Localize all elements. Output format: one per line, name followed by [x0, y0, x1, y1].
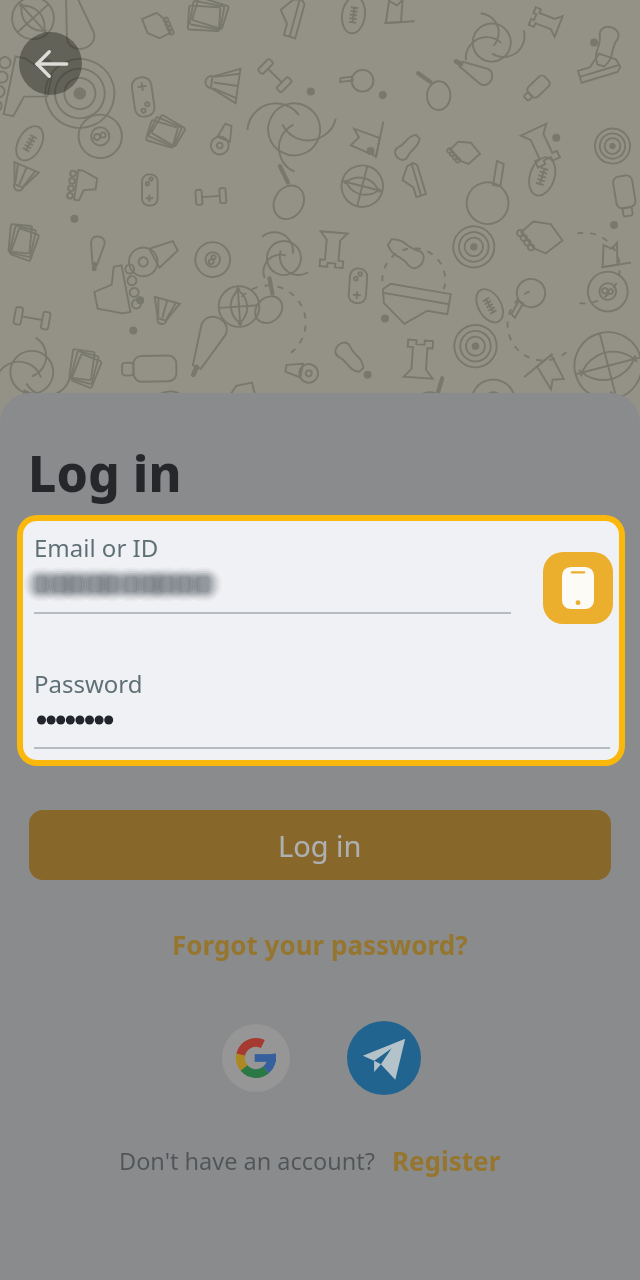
staticText: Log in	[28, 439, 182, 507]
staticText: Don't have an account?	[119, 1145, 376, 1177]
button[interactable]: Register	[376, 1139, 507, 1182]
button[interactable]: Login with phone number	[543, 552, 613, 624]
staticText: Email or ID	[34, 531, 159, 564]
button[interactable]: Log in	[29, 810, 611, 880]
button[interactable]: Sign in with Telegram	[347, 1021, 421, 1095]
staticText: Register	[392, 1143, 501, 1178]
staticText: Log in	[278, 826, 362, 865]
button[interactable]: Forgot your password?	[162, 921, 478, 968]
button[interactable]: Sign in with Google	[222, 1024, 290, 1092]
staticText: Forgot your password?	[172, 927, 468, 962]
button[interactable]: Back	[19, 32, 82, 95]
staticText: Password	[34, 667, 143, 700]
